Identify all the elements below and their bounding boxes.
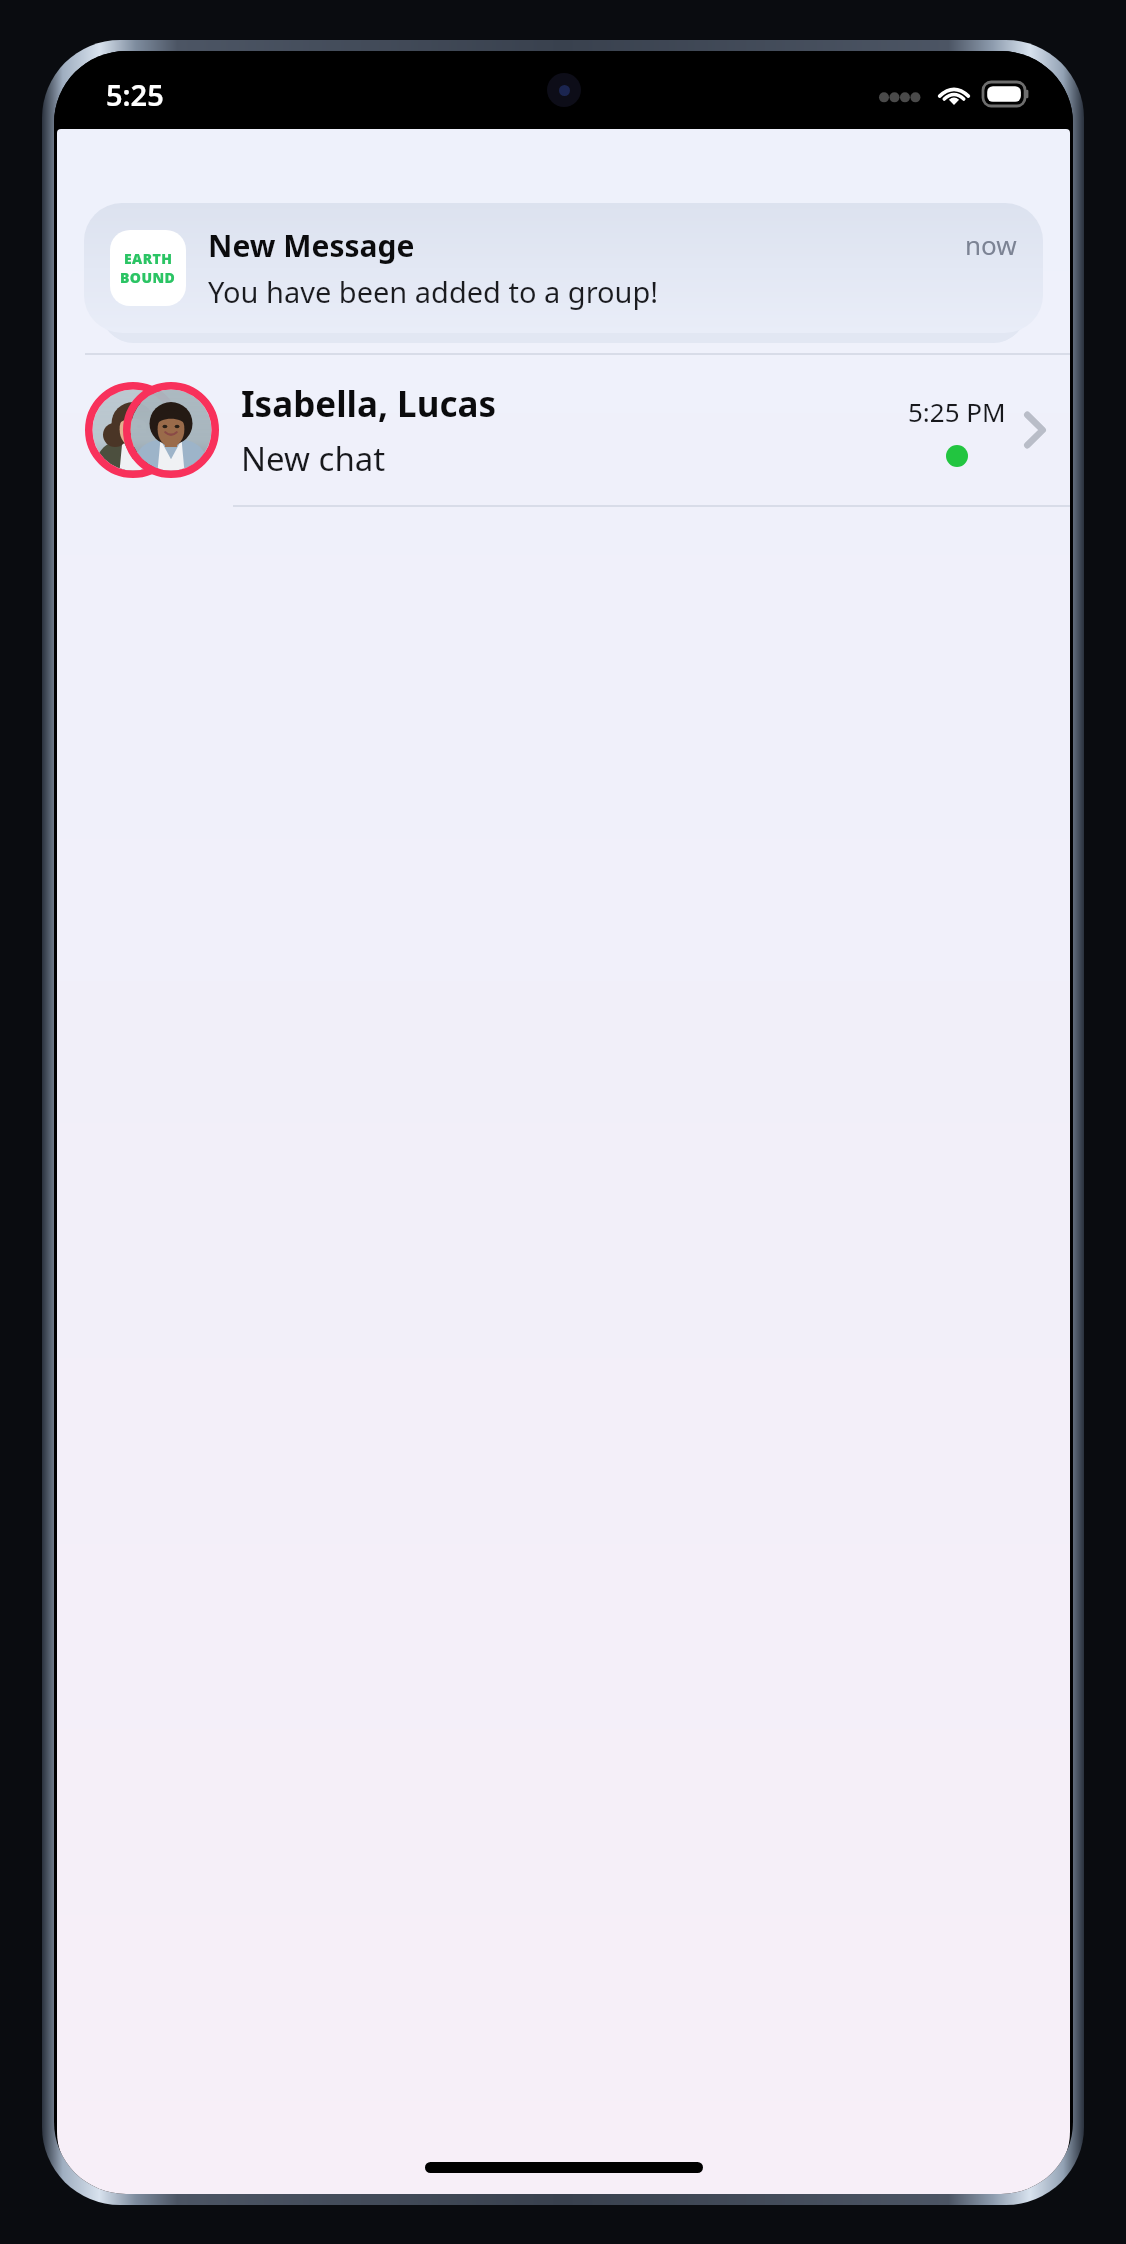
staticText: 5:25 PM (908, 394, 1006, 429)
staticText: New chat (241, 436, 386, 481)
staticText: 5:25 (106, 75, 164, 114)
button[interactable]: Isabella, Lucas (57, 355, 1070, 505)
staticText: now (965, 227, 1017, 262)
staticText: Isabella, Lucas (241, 380, 496, 428)
staticText: You have been added to a group! (208, 272, 659, 311)
button[interactable]: EARTH (84, 203, 1043, 333)
staticText: Chats (85, 243, 261, 327)
staticText: BOUND (120, 268, 176, 287)
staticText: New Message (208, 225, 415, 266)
other: Open chat (1024, 410, 1046, 450)
staticText: EARTH (124, 249, 173, 268)
